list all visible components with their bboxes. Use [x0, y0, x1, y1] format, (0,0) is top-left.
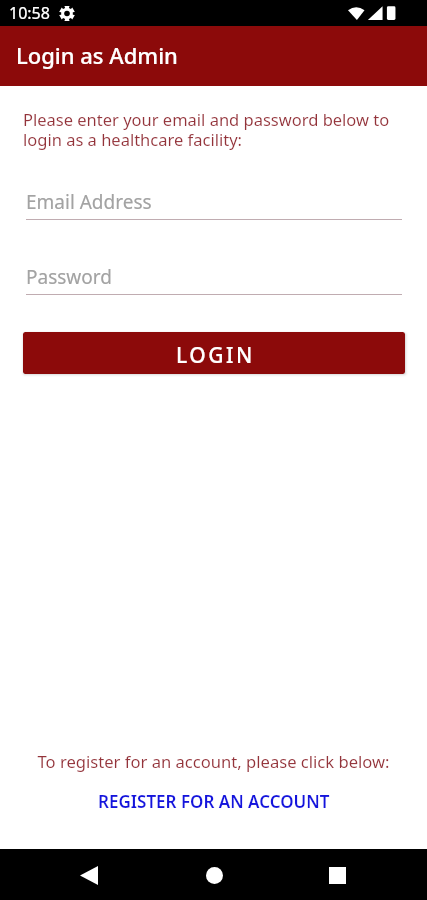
button[interactable]: REGISTER FOR AN ACCOUNT [0, 790, 427, 813]
button[interactable]: Password [26, 264, 402, 295]
staticText: LOGIN [176, 341, 255, 370]
button[interactable]: Email Address [26, 189, 402, 220]
button[interactable]: Recent apps [315, 853, 359, 897]
button[interactable]: LOGIN [23, 332, 405, 374]
staticText: Login as Admin [16, 40, 178, 70]
staticText: Password [26, 264, 112, 290]
button[interactable]: Home [192, 853, 236, 897]
staticText: To register for an account, please click… [0, 750, 427, 773]
staticText: Please enter your email and password bel… [23, 108, 405, 151]
staticText: REGISTER FOR AN ACCOUNT [98, 790, 330, 813]
button[interactable]: Back [67, 853, 111, 897]
staticText: Email Address [26, 189, 152, 215]
staticText: 10:58 [9, 2, 50, 24]
